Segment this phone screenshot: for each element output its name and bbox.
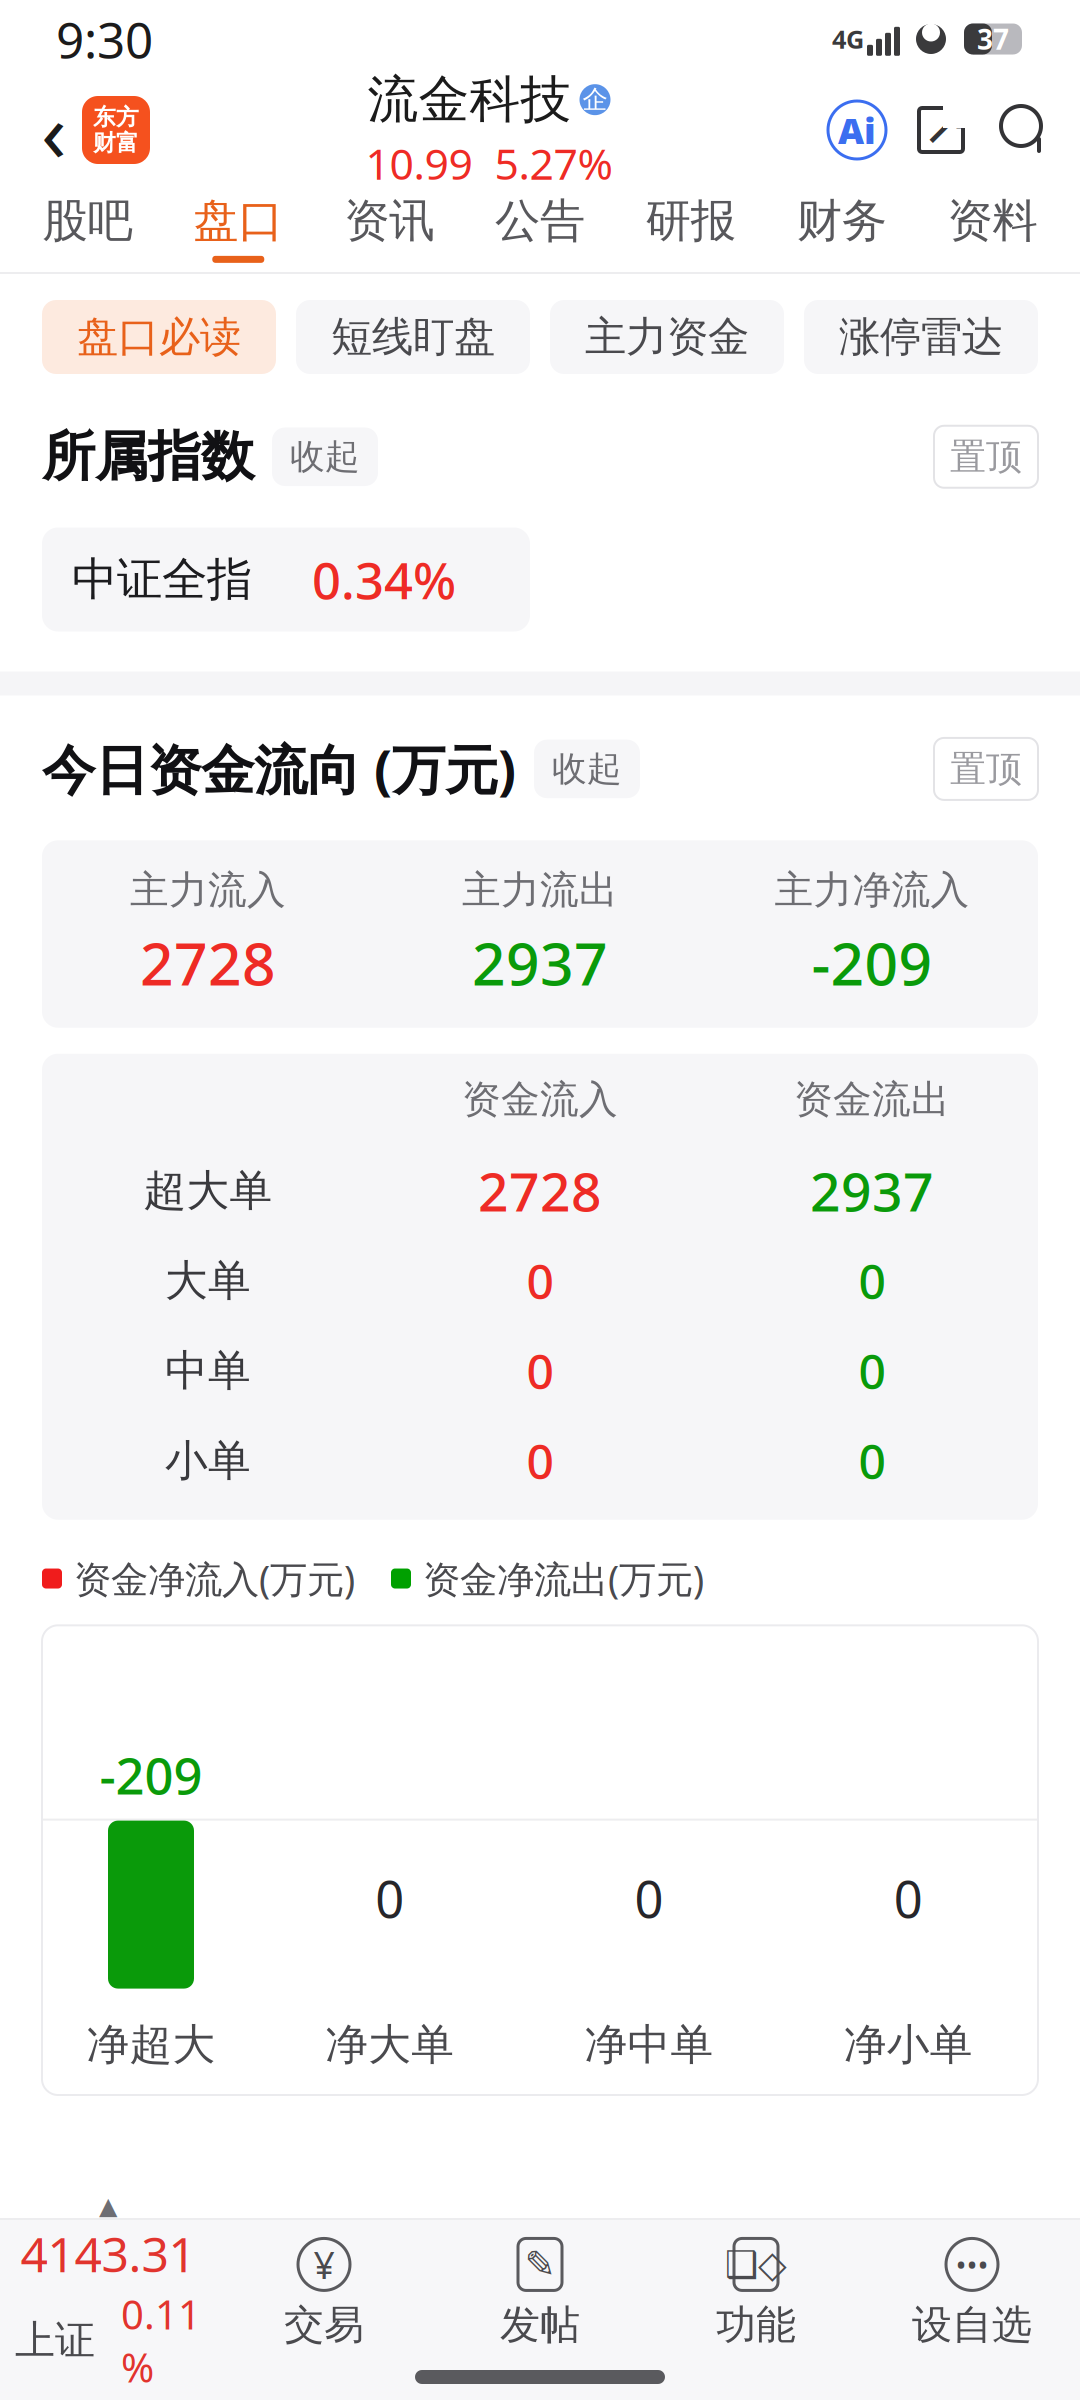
button[interactable]: 资料 (917, 182, 1068, 274)
staticText: 小单 (165, 1434, 251, 1487)
staticText: 设自选 (912, 2300, 1032, 2349)
staticText: 功能 (716, 2300, 796, 2349)
button[interactable]: 公告 (465, 182, 615, 274)
staticText: 9:30 (56, 6, 153, 72)
button[interactable]: 东方财富 (82, 96, 150, 164)
staticText: 大单 (165, 1254, 251, 1307)
staticText: 股吧 (42, 193, 132, 249)
staticText: ¥ (313, 2240, 334, 2289)
staticText: 资料 (948, 193, 1038, 249)
staticText: 财富 (93, 129, 139, 157)
staticText: 2728 (140, 924, 276, 1002)
button[interactable]: AI 助手 (828, 101, 886, 159)
staticText: 收起 (290, 435, 360, 478)
staticText: 财务 (797, 193, 887, 249)
button[interactable]: Back (26, 88, 82, 172)
button[interactable]: 盘口 (163, 182, 314, 274)
staticText: 0 (894, 1865, 923, 1932)
button[interactable]: 收起 (534, 740, 640, 798)
staticText: 东方 (93, 103, 139, 131)
staticText: 资金流入 (462, 1076, 618, 1123)
staticText: 置顶 (950, 435, 1022, 479)
staticText: 盘口 (193, 193, 283, 249)
staticText: -209 (811, 924, 932, 1002)
staticText: Ai (838, 106, 876, 154)
staticText: ▲ (99, 2192, 117, 2220)
staticText: 0.11% (121, 2287, 201, 2394)
staticText: 超大单 (143, 1164, 272, 1217)
button[interactable]: ❑◇ (648, 2236, 864, 2349)
staticText: ↗ (921, 93, 968, 157)
staticText: 主力流入 (130, 866, 286, 914)
staticText: 4G (832, 22, 864, 56)
staticText: 短线盯盘 (331, 312, 495, 362)
staticText: 5.27% (494, 135, 612, 191)
staticText: 资金净流出(万元) (423, 1554, 704, 1603)
staticText: 主力资金 (585, 312, 749, 362)
staticText: 0 (526, 1249, 553, 1313)
button[interactable]: 涨停雷达 (804, 300, 1038, 374)
button[interactable]: 置顶 (934, 738, 1038, 800)
staticText: 所属指数 (42, 424, 254, 489)
button[interactable]: 盘口必读 (42, 300, 276, 374)
button[interactable]: 置顶 (934, 426, 1038, 488)
staticText: 今日资金流向 (万元) (42, 733, 516, 804)
staticText: 37 (977, 20, 1009, 58)
staticText: 净中单 (584, 2019, 713, 2071)
button[interactable]: 研报 (615, 182, 766, 274)
staticText: 企 (582, 84, 607, 115)
staticText: 中证全指 (72, 552, 252, 607)
button[interactable]: 主力资金 (550, 300, 784, 374)
staticText: 0.34% (312, 546, 456, 613)
staticText: 4143.31 (20, 2222, 195, 2285)
staticText: 0 (526, 1429, 553, 1493)
staticText: 主力流出 (462, 866, 618, 914)
staticText: 0 (858, 1339, 885, 1403)
staticText: 0 (375, 1865, 404, 1932)
staticText: -209 (99, 1741, 202, 1809)
staticText: 资讯 (344, 193, 434, 249)
button[interactable]: 财务 (766, 182, 917, 274)
staticText: ••• (955, 2245, 988, 2284)
staticText: 交易 (284, 2300, 364, 2349)
staticText: 0 (634, 1865, 663, 1932)
button[interactable]: 上证指数 (0, 2192, 216, 2394)
staticText: 研报 (646, 193, 736, 249)
button[interactable]: ✎ (432, 2236, 648, 2349)
staticText: 上证 (15, 2316, 95, 2365)
staticText: 资金流出 (794, 1076, 950, 1123)
staticText: 涨停雷达 (839, 312, 1003, 362)
button[interactable]: ••• (864, 2236, 1080, 2349)
staticText: 公告 (495, 193, 585, 249)
staticText: 资金净流入(万元) (74, 1554, 355, 1603)
staticText: 盘口必读 (77, 312, 241, 362)
staticText: 收起 (552, 748, 622, 790)
button[interactable]: 股吧 (12, 182, 163, 274)
button[interactable]: 搜索 (996, 101, 1054, 159)
staticText: 0 (858, 1429, 885, 1493)
button[interactable]: 分享 (912, 101, 970, 159)
staticText: 2728 (478, 1155, 602, 1226)
staticText: 10.99 (365, 135, 472, 191)
staticText: 净小单 (844, 2019, 973, 2071)
staticText: 0 (858, 1249, 885, 1313)
button[interactable]: 中证全指 (42, 527, 530, 631)
button[interactable]: ¥ (216, 2236, 432, 2349)
staticText: 流金科技 (367, 69, 571, 131)
staticText: 0 (526, 1339, 553, 1403)
staticText: 置顶 (950, 747, 1022, 791)
staticText: 净超大 (86, 2019, 215, 2071)
staticText: 主力净流入 (774, 866, 969, 914)
button[interactable]: 短线盯盘 (296, 300, 530, 374)
staticText: ✎ (524, 2243, 555, 2286)
staticText: 中单 (165, 1344, 251, 1397)
staticText: 净大单 (325, 2019, 454, 2071)
staticText: ‹ (41, 75, 67, 185)
button[interactable]: 资讯 (314, 182, 465, 274)
staticText: 2937 (472, 924, 608, 1002)
staticText: 2937 (810, 1155, 934, 1226)
button[interactable]: 收起 (272, 427, 378, 486)
staticText: ❑◇ (725, 2243, 787, 2286)
staticText: 发帖 (500, 2300, 580, 2349)
